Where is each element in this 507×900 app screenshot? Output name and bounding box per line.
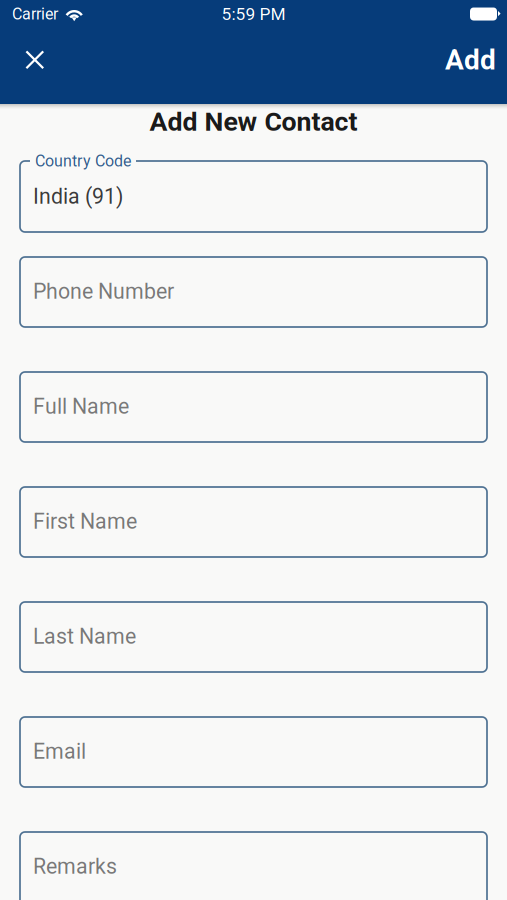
staticText: India (91)	[33, 184, 123, 209]
staticText: Country Code	[35, 152, 131, 170]
button[interactable]: Phone Number	[20, 257, 487, 327]
button[interactable]: First Name	[20, 487, 487, 557]
staticText: First Name	[33, 509, 137, 534]
button[interactable]: Add	[445, 28, 496, 92]
staticText: Last Name	[33, 624, 136, 649]
staticText: Phone Number	[33, 279, 174, 304]
staticText: Full Name	[33, 394, 129, 419]
staticText: Add New Contact	[149, 106, 357, 137]
button[interactable]: Email	[20, 717, 487, 787]
button[interactable]: Full Name	[20, 372, 487, 442]
staticText: Carrier	[12, 5, 58, 23]
button[interactable]: Remarks	[20, 832, 487, 900]
button[interactable]: Close	[13, 28, 57, 92]
staticText: Remarks	[33, 854, 117, 879]
button[interactable]: Country Code	[20, 161, 487, 232]
staticText: Email	[33, 739, 86, 764]
button[interactable]: Last Name	[20, 602, 487, 672]
staticText: Add	[445, 44, 496, 76]
staticText: 5:59 PM	[221, 4, 285, 24]
